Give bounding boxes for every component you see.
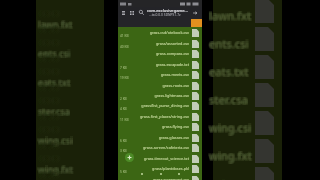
staticText: 00 000 xyxy=(39,83,60,92)
staticText: 00 000 xyxy=(41,141,62,150)
staticText: wing.csi xyxy=(39,134,74,146)
staticText: lawn.fxt xyxy=(38,18,73,30)
staticText: eats.txt xyxy=(208,63,248,78)
staticText: 40 KB xyxy=(120,45,129,49)
button[interactable]: grass.lightmass.csv xyxy=(118,91,202,101)
staticText: 00 000 xyxy=(39,141,60,150)
staticText: lawn.fxt xyxy=(210,8,253,23)
button[interactable]: grass.flying.csv xyxy=(118,122,202,132)
button[interactable]: Search xyxy=(137,8,145,17)
staticText: ster.csa xyxy=(208,92,247,107)
button[interactable]: grass.csd/otebook.csv xyxy=(118,28,202,38)
staticText: lawn.fxt xyxy=(38,19,73,31)
staticText: wing.fxt xyxy=(39,163,74,175)
staticText: 5 KB xyxy=(120,170,127,174)
staticText: ster.csa xyxy=(209,91,248,106)
staticText: lawn.fxt xyxy=(38,17,73,29)
staticText: 00 000 xyxy=(40,142,61,151)
staticText: eats.txt xyxy=(38,75,71,87)
staticText: 11 KB xyxy=(120,118,129,122)
button[interactable]: Navigation xyxy=(157,170,165,178)
staticText: wing.csi xyxy=(210,119,253,134)
staticText: ents.csi xyxy=(39,48,72,60)
button[interactable]: Forward xyxy=(191,8,199,17)
staticText: ents.csi xyxy=(38,46,71,58)
staticText: eats.txt xyxy=(38,76,71,88)
staticText: 00 000 xyxy=(38,171,59,180)
staticText: 00 000 xyxy=(38,113,59,122)
button[interactable]: Add xyxy=(125,153,134,162)
button[interactable]: grass.first_places/string.csv xyxy=(118,112,202,122)
button[interactable]: grass.screencast.csv xyxy=(118,175,202,180)
staticText: wing.csi xyxy=(209,120,252,135)
staticText: ents.csi xyxy=(38,47,71,59)
staticText: ...ta.0.0.0 SDNPS1.7z xyxy=(149,12,181,16)
staticText: eats.txt xyxy=(209,64,249,79)
staticText: eats.csa xyxy=(208,177,251,180)
button[interactable]: grass.escapade.txt xyxy=(118,60,202,70)
staticText: 00 000 xyxy=(40,84,61,93)
staticText: eats.txt xyxy=(37,75,70,87)
staticText: 00 000 xyxy=(40,169,61,178)
staticText: 4 KB xyxy=(120,107,127,111)
staticText: grass.escapade.txt xyxy=(155,62,189,67)
staticText: 00 000 xyxy=(38,25,59,34)
staticText: ster.csa xyxy=(210,91,249,106)
button[interactable]: com.exclusivegame... xyxy=(146,7,188,19)
staticText: wing.fxt xyxy=(208,149,251,164)
staticText: 00 000 xyxy=(40,24,61,33)
staticText: ents.csi xyxy=(37,48,70,60)
button[interactable]: Navigation xyxy=(138,170,146,178)
staticText: eats.csa xyxy=(209,176,252,180)
button[interactable]: Grid view xyxy=(128,8,136,17)
staticText: eats.txt xyxy=(209,63,249,78)
staticText: 00 000 xyxy=(38,140,59,149)
staticText: 00 000 xyxy=(38,84,59,93)
staticText: ents.csi xyxy=(38,48,71,60)
staticText: wing.fxt xyxy=(38,163,73,175)
button[interactable]: grass.compass.csv xyxy=(118,49,202,59)
button[interactable]: grass.roots.csv xyxy=(118,81,202,91)
button[interactable]: grass/list_purse_dining.csv xyxy=(118,101,202,111)
staticText: eats.csa xyxy=(210,176,253,180)
staticText: ster.csa xyxy=(37,106,69,118)
staticText: eats.txt xyxy=(210,64,250,79)
staticText: lawn.fxt xyxy=(37,17,72,29)
staticText: lawn.fxt xyxy=(208,9,251,24)
button[interactable]: grass.glasses.csv xyxy=(118,133,202,143)
button[interactable]: grass.screen/cafeteria.csv xyxy=(118,143,202,153)
staticText: 00 000 xyxy=(39,56,60,65)
button[interactable]: grass/assorted.csv xyxy=(118,39,202,49)
button[interactable]: Menu xyxy=(120,8,127,17)
staticText: 00 000 xyxy=(39,85,60,94)
staticText: wing.csi xyxy=(208,119,251,134)
staticText: 00 000 xyxy=(40,113,61,122)
staticText: 00 000 xyxy=(38,82,59,91)
button[interactable]: Navigation xyxy=(175,170,183,178)
button[interactable]: grass.timeout_science.txt xyxy=(118,154,202,164)
staticText: 00 000 xyxy=(40,55,61,64)
staticText: ents.csi xyxy=(37,47,70,59)
button[interactable]: grass/plantdoses.pkl xyxy=(118,164,202,174)
button[interactable]: grass.meets.csv xyxy=(118,70,202,80)
staticText: ents.csi xyxy=(210,37,250,52)
